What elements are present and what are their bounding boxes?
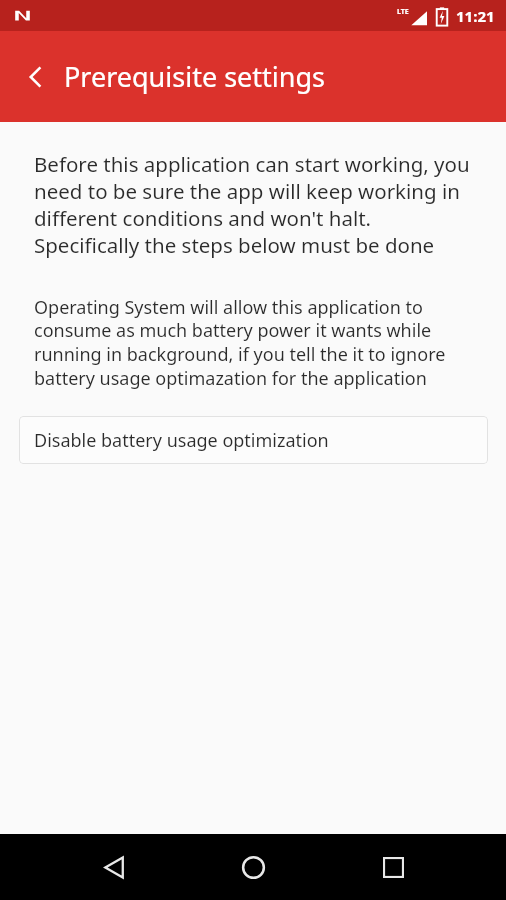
staticText: 11:21 — [456, 6, 495, 26]
button[interactable]: Back — [12, 53, 60, 101]
button[interactable]: Back — [88, 841, 140, 893]
staticText: LTE — [397, 7, 409, 17]
staticText: Disable battery usage optimization — [34, 428, 329, 453]
button[interactable]: Recent apps — [367, 841, 419, 893]
button[interactable]: Home — [227, 841, 279, 893]
button[interactable]: Disable battery usage optimization — [19, 416, 488, 464]
staticText: Prerequisite settings — [64, 58, 326, 95]
staticText: Before this application can start workin… — [34, 150, 480, 259]
staticText: Operating System will allow this applica… — [34, 295, 486, 391]
